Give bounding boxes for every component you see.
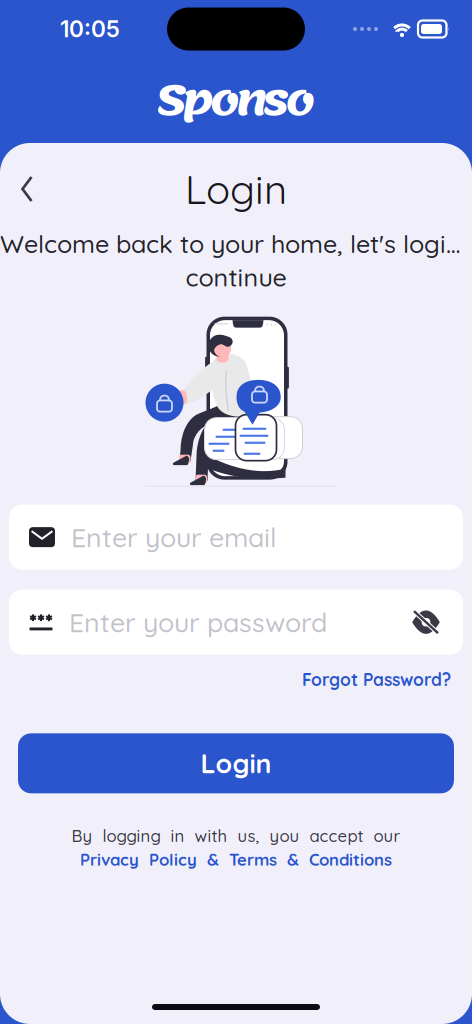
- button[interactable]: Show password: [403, 599, 463, 645]
- staticText: By logging in with us, you accept our: [71, 825, 400, 846]
- button[interactable]: Forgot Password?: [302, 664, 472, 695]
- staticText: Welcome back to your home, let's login a…: [0, 228, 472, 259]
- button[interactable]: Login: [0, 733, 472, 793]
- staticText: 10:05: [60, 15, 120, 43]
- staticText: continue: [185, 261, 286, 293]
- staticText: Login: [200, 747, 271, 780]
- staticText: Enter your email: [71, 520, 276, 554]
- button[interactable]: Back: [0, 164, 50, 214]
- staticText: Login: [185, 164, 287, 214]
- staticText: Privacy Policy & Terms & Conditions: [80, 849, 392, 870]
- staticText: Forgot Password?: [302, 669, 451, 690]
- staticText: Sponso: [156, 59, 315, 142]
- staticText: Enter your password: [69, 605, 327, 639]
